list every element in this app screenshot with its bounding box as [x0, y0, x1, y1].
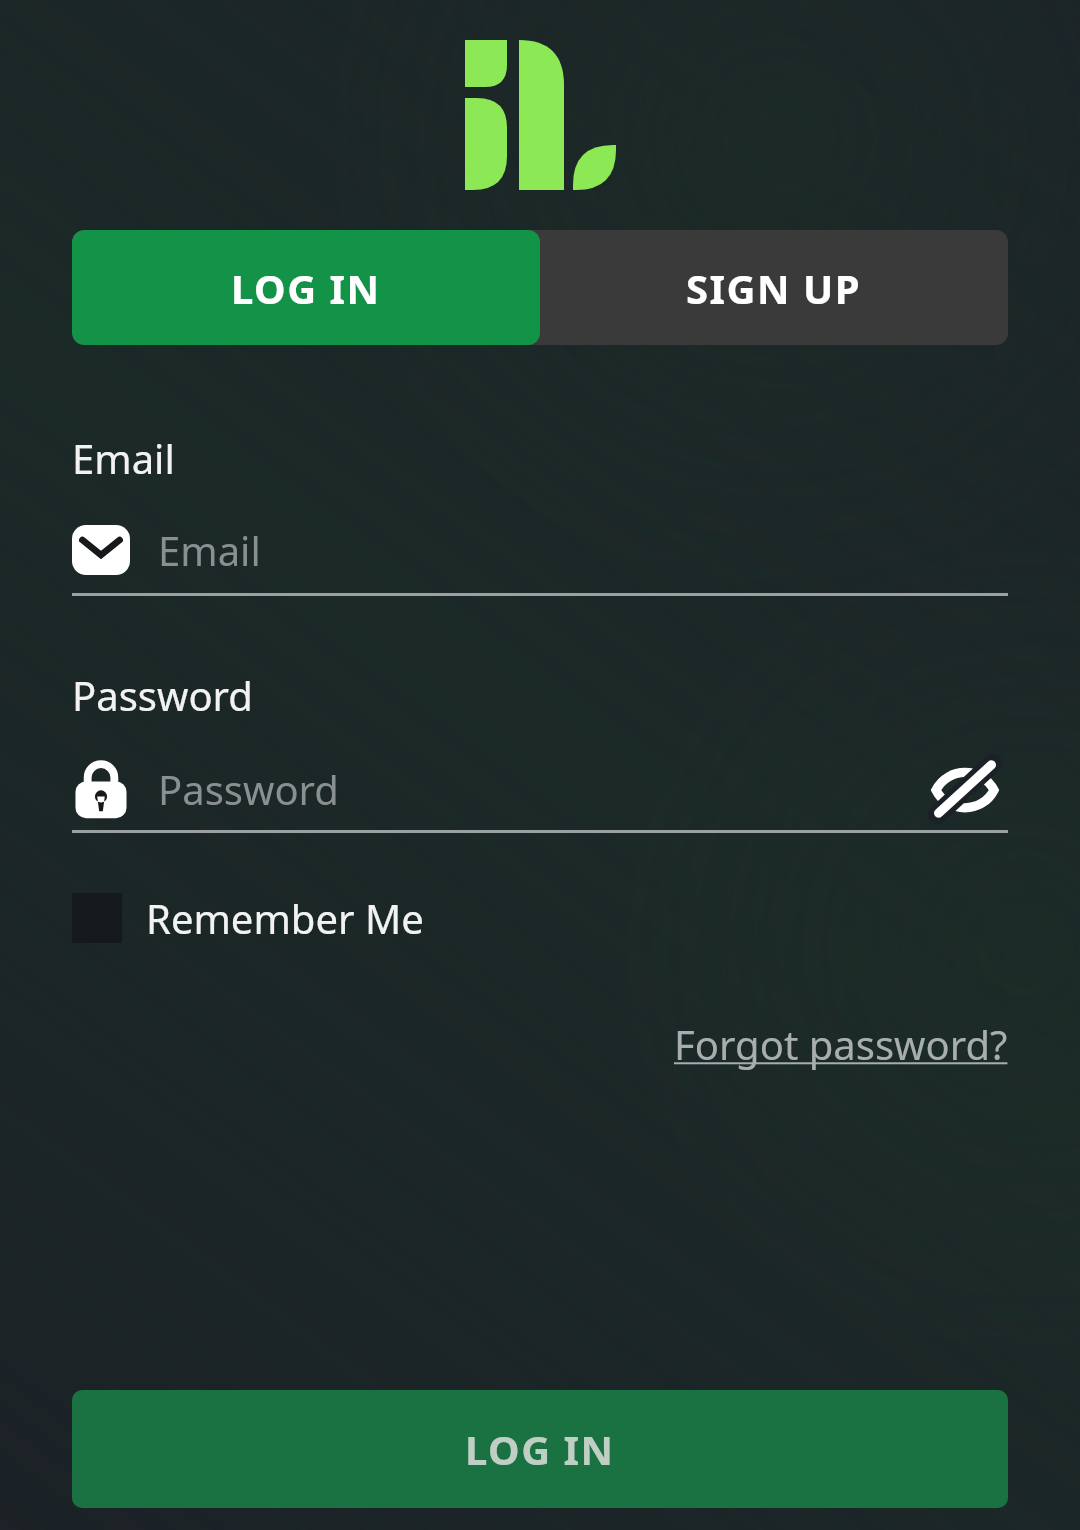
staticText: LOG IN [231, 261, 381, 315]
staticText: Password [158, 762, 339, 816]
button[interactable]: SIGN UP [540, 230, 1008, 345]
staticText: Remember Me [146, 891, 424, 945]
button[interactable]: Show password [922, 754, 1008, 824]
staticText: Forgot password? [674, 1017, 1008, 1071]
button[interactable]: Password [72, 758, 922, 820]
staticText: Email [72, 431, 175, 485]
button[interactable]: Forgot password? [674, 1017, 1008, 1071]
staticText: Password [72, 668, 253, 722]
button[interactable]: Remember Me [72, 891, 424, 945]
other: Email [72, 525, 130, 575]
button[interactable]: LOG IN [72, 1390, 1008, 1508]
button[interactable]: Email [72, 517, 1008, 583]
staticText: LOG IN [465, 1422, 615, 1476]
staticText: Email [158, 523, 261, 577]
staticText: SIGN UP [686, 261, 862, 315]
button[interactable]: LOG IN [72, 230, 540, 345]
other: Password [72, 758, 130, 820]
